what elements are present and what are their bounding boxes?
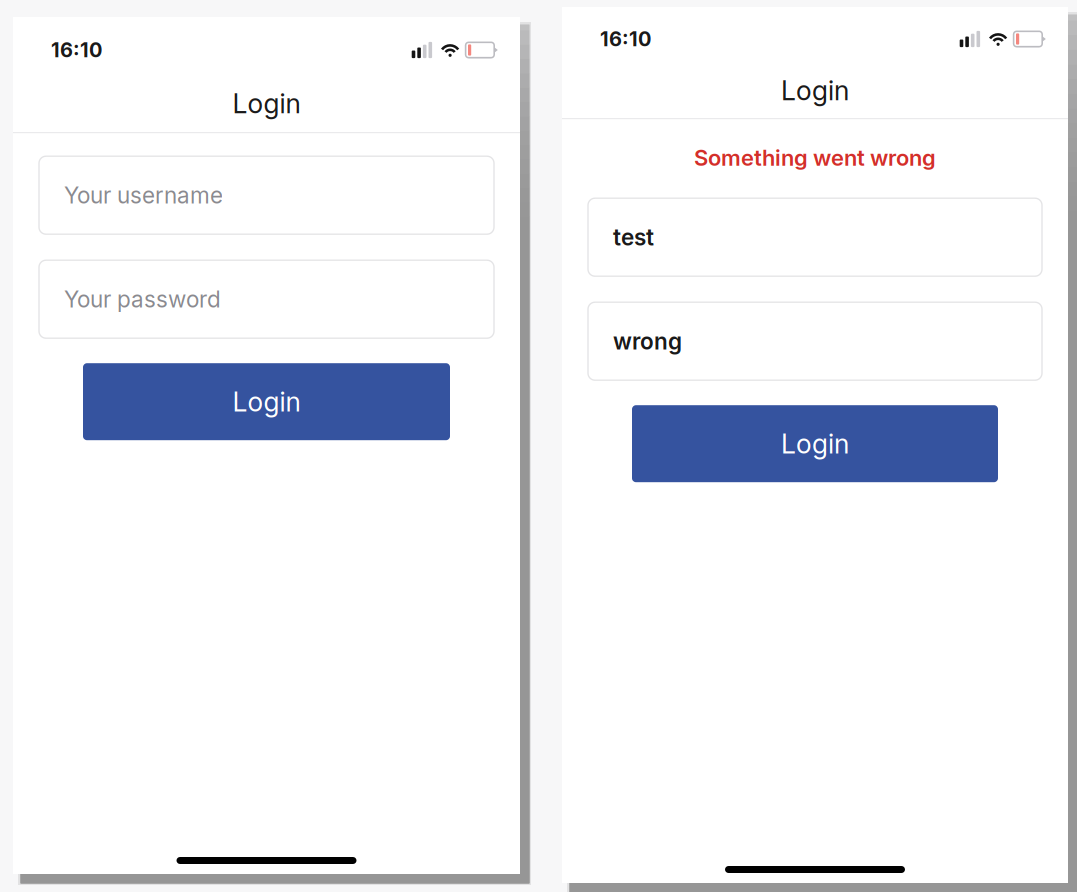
button[interactable]: Your username xyxy=(39,156,494,234)
staticText: wrong xyxy=(613,327,682,355)
button[interactable]: test xyxy=(588,198,1042,276)
staticText: Your username xyxy=(64,181,223,209)
staticText: Login xyxy=(781,428,849,460)
button[interactable]: Login xyxy=(632,405,998,482)
button[interactable]: wrong xyxy=(588,302,1042,380)
staticText: test xyxy=(613,223,654,251)
staticText: 16:10 xyxy=(51,38,102,62)
staticText: Login xyxy=(781,74,849,107)
staticText: Something went wrong xyxy=(694,144,936,171)
staticText: Login xyxy=(232,386,300,418)
button[interactable]: Your password xyxy=(39,260,494,338)
staticText: Login xyxy=(232,87,300,120)
staticText: 16:10 xyxy=(600,27,651,51)
button[interactable]: Login xyxy=(83,363,450,440)
staticText: Your password xyxy=(64,285,221,313)
